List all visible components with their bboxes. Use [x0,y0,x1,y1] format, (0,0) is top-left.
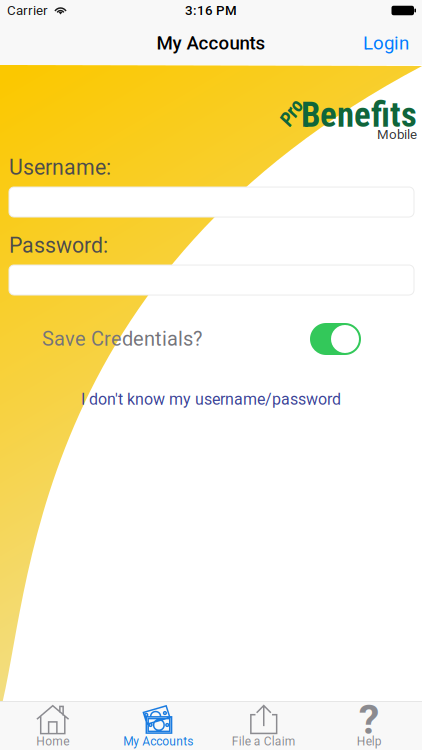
staticText: Password: [9,233,108,258]
button[interactable]: Login [350,22,422,64]
staticText: ? [359,695,380,744]
button[interactable]: File a Claim [211,701,316,750]
staticText: My Accounts [156,32,265,54]
staticText: Login [363,32,409,54]
staticText: Home [36,734,69,749]
staticText: Username: [9,155,111,180]
staticText: File a Claim [232,734,296,749]
staticText: Help [357,734,382,749]
button[interactable] [310,323,361,355]
button[interactable]: My Accounts [105,701,211,750]
staticText: Benefits [301,95,417,135]
button[interactable]: I don't know my username/password [75,387,347,412]
staticText: Save Credentials? [42,327,202,351]
staticText: Carrier [7,3,48,18]
staticText: My Accounts [123,734,193,749]
staticText: 3:16 PM [185,3,237,18]
staticText: Mobile [377,127,417,142]
staticText: I don't know my username/password [81,390,341,409]
button[interactable]: ? [316,701,422,750]
button[interactable]: Home [0,701,105,750]
staticText: Pro [278,101,305,124]
